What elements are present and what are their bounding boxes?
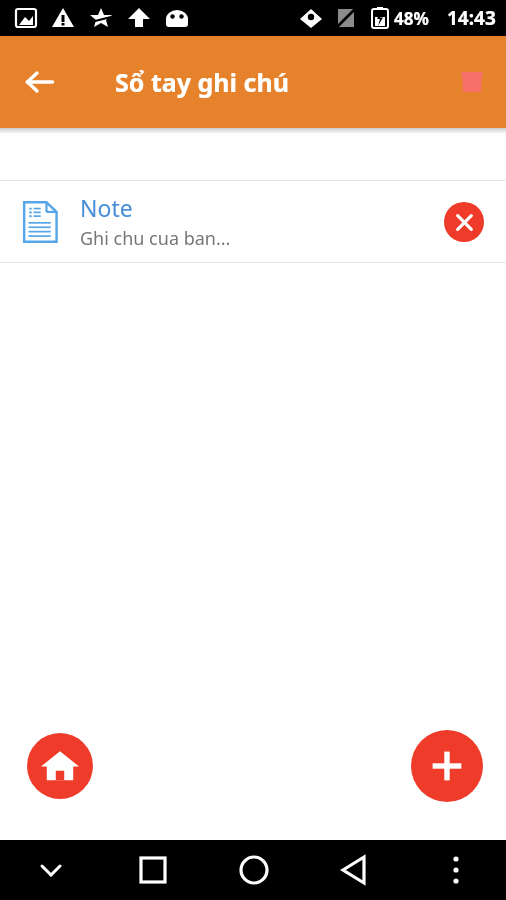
button[interactable]: Hide keyboard: [0, 840, 102, 900]
button[interactable]: Home: [27, 733, 93, 799]
button[interactable]: Note: [0, 181, 506, 262]
button[interactable]: More options: [405, 840, 506, 900]
button[interactable]: Back: [304, 840, 405, 900]
button[interactable]: Delete note: [444, 202, 484, 242]
staticText: 48%: [394, 7, 429, 30]
button[interactable]: Add note: [411, 730, 483, 802]
staticText: Note: [80, 192, 133, 223]
button[interactable]: Delete all: [444, 54, 500, 110]
staticText: 14:43: [447, 5, 496, 31]
staticText: Ghi chu cua ban...: [80, 226, 231, 251]
button[interactable]: Recents: [102, 840, 203, 900]
button[interactable]: Home: [203, 840, 304, 900]
button[interactable]: Back: [12, 54, 68, 110]
staticText: Sổ tay ghi chú: [115, 65, 289, 99]
